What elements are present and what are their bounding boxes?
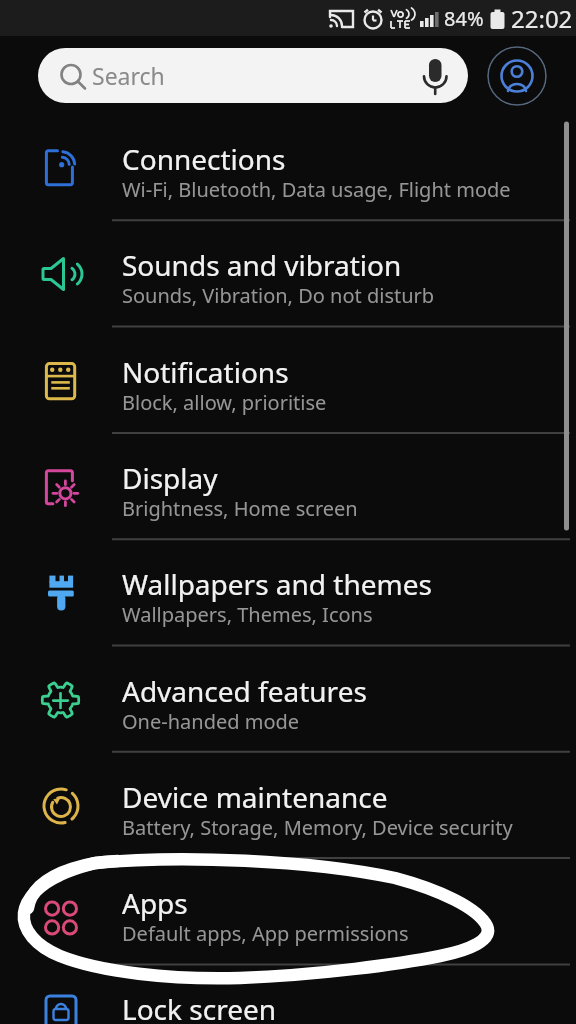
staticText: Sounds and vibration bbox=[122, 246, 402, 284]
staticText: Notifications bbox=[122, 353, 289, 391]
button[interactable]: Lock screen bbox=[0, 964, 576, 1024]
staticText: Search bbox=[92, 60, 165, 91]
button[interactable]: Wallpapers and themes bbox=[0, 539, 576, 646]
staticText: Brightness, Home screen bbox=[122, 495, 358, 522]
button[interactable]: Device maintenance bbox=[0, 752, 576, 859]
staticText: Wallpapers, Themes, Icons bbox=[122, 601, 373, 628]
button[interactable] bbox=[487, 46, 547, 106]
staticText: Sounds, Vibration, Do not disturb bbox=[122, 282, 435, 309]
staticText: Wallpapers and themes bbox=[122, 565, 432, 603]
button[interactable]: Notifications bbox=[0, 327, 576, 434]
staticText: Battery, Storage, Memory, Device securit… bbox=[122, 814, 513, 841]
staticText: 22:02 bbox=[511, 2, 573, 35]
staticText: Wi-Fi, Bluetooth, Data usage, Flight mod… bbox=[122, 176, 511, 203]
button[interactable]: Advanced features bbox=[0, 646, 576, 753]
staticText: Block, allow, prioritise bbox=[122, 389, 327, 416]
staticText: Advanced features bbox=[122, 672, 367, 710]
button[interactable]: Display bbox=[0, 433, 576, 540]
button[interactable]: Search bbox=[38, 48, 468, 103]
button[interactable]: Apps bbox=[0, 858, 576, 965]
staticText: Connections bbox=[122, 140, 286, 178]
staticText: Lock screen bbox=[122, 990, 277, 1024]
staticText: Apps bbox=[122, 884, 188, 922]
staticText: Device maintenance bbox=[122, 778, 388, 816]
staticText: Display bbox=[122, 459, 218, 497]
button[interactable]: Sounds and vibration bbox=[0, 220, 576, 327]
staticText: 84% bbox=[444, 5, 484, 32]
staticText: Default apps, App permissions bbox=[122, 920, 409, 947]
staticText: One-handed mode bbox=[122, 708, 300, 735]
button[interactable]: Connections bbox=[0, 114, 576, 221]
